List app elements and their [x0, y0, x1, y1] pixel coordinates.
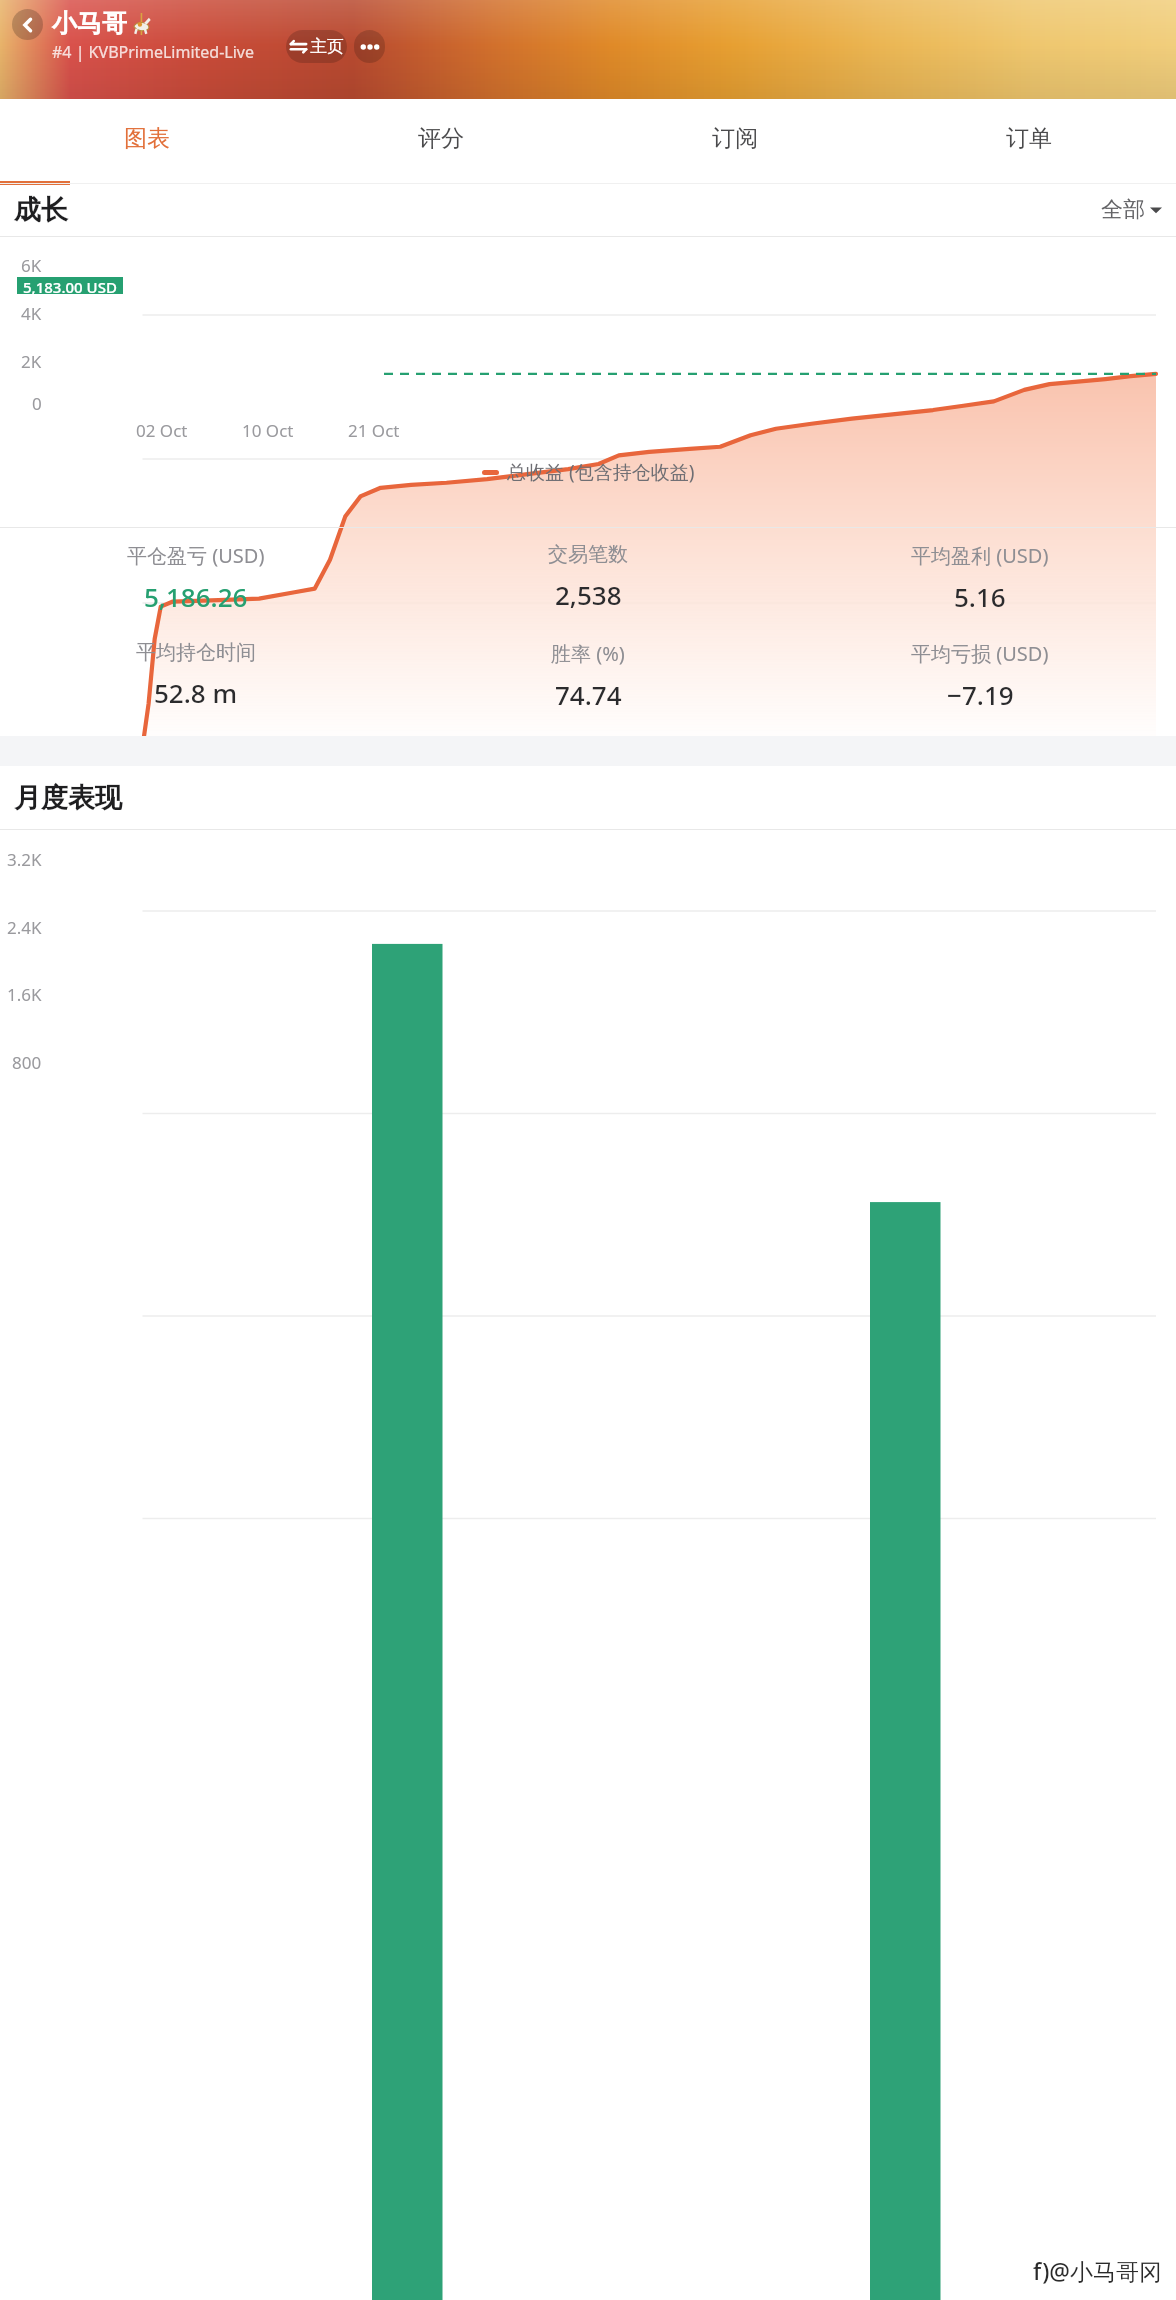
button[interactable]: 订阅 [588, 99, 882, 177]
staticText: 2,538 [555, 577, 622, 612]
button[interactable]: 订单 [882, 99, 1176, 177]
staticText: 2.4K [7, 916, 42, 939]
staticText: 2K [21, 350, 42, 373]
button[interactable]: More options [354, 30, 385, 63]
button[interactable]: 主页 [286, 30, 347, 63]
staticText: 平均盈利 (USD) [911, 542, 1049, 569]
staticText: f)@小马哥冈 [1033, 2255, 1162, 2286]
staticText: 74.74 [555, 677, 622, 712]
staticText: 6K [21, 254, 42, 277]
staticText: 订单 [1006, 124, 1052, 153]
staticText: 平均亏损 (USD) [911, 640, 1049, 667]
staticText: 5,186.26 [144, 579, 248, 614]
staticText: 交易笔数 [548, 542, 628, 567]
staticText: 订阅 [712, 124, 758, 153]
button[interactable]: 全部 [1101, 196, 1162, 224]
staticText: 3.2K [7, 848, 42, 871]
staticText: 52.8 m [154, 675, 238, 710]
staticText: 4K [21, 302, 42, 325]
staticText: 5,183.00 USD [23, 277, 117, 294]
staticText: 胜率 (%) [551, 640, 625, 667]
button[interactable]: 评分 [294, 99, 588, 177]
staticText: #4 | KVBPrimeLimited-Live [52, 41, 254, 63]
staticText: 平仓盈亏 (USD) [127, 542, 265, 569]
staticText: −7.19 [947, 677, 1014, 712]
staticText: 平均持仓时间 [136, 640, 256, 665]
staticText: 0 [32, 392, 42, 415]
staticText: 1.6K [7, 983, 42, 1006]
button[interactable]: Back [12, 9, 43, 40]
button[interactable]: 图表 [0, 99, 294, 177]
staticText: 800 [12, 1051, 42, 1074]
staticText: 5.16 [954, 579, 1006, 614]
staticText: 21 Oct [348, 419, 400, 442]
staticText: 总收益 (包含持仓收益) [507, 459, 695, 485]
staticText: 月度表现 [14, 781, 122, 815]
staticText: 02 Oct [136, 419, 188, 442]
staticText: 全部 [1101, 196, 1145, 224]
staticText: 小马哥 [52, 8, 127, 39]
staticText: 图表 [124, 124, 170, 153]
staticText: 评分 [418, 124, 464, 153]
staticText: 10 Oct [242, 419, 294, 442]
staticText: 主页 [310, 36, 344, 57]
staticText: 成长 [14, 193, 68, 227]
